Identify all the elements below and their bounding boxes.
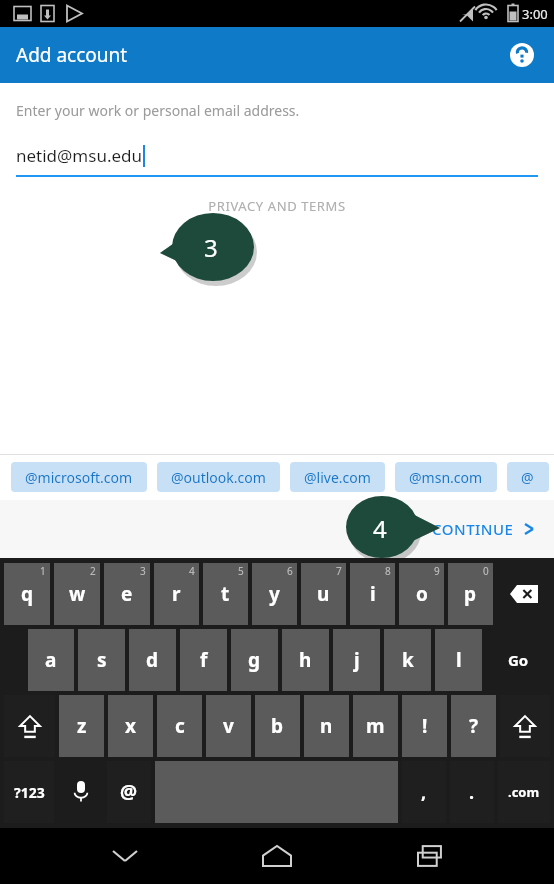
button[interactable]: p (448, 563, 493, 625)
button[interactable]: Go (486, 629, 550, 691)
button[interactable]: @microsoft.com (11, 462, 147, 492)
staticText: . (469, 780, 475, 805)
button[interactable]: e (104, 563, 150, 625)
button[interactable]: x (108, 695, 153, 757)
button[interactable]: @outlook.com (157, 462, 280, 492)
staticText: ? (469, 713, 479, 739)
button[interactable]: k (384, 629, 431, 691)
staticText: z (77, 713, 87, 739)
staticText: e (121, 581, 133, 607)
staticText: x (125, 713, 136, 739)
staticText: Go (508, 650, 529, 670)
staticText: 0 (483, 564, 489, 578)
button[interactable]: Home (249, 828, 305, 884)
staticText: 3 (204, 231, 218, 264)
button[interactable]: r (154, 563, 199, 625)
staticText: 6 (287, 564, 293, 578)
button[interactable]: Voice input (58, 761, 103, 823)
button[interactable]: @live.com (290, 462, 385, 492)
button[interactable]: , (402, 761, 446, 823)
button[interactable]: n (304, 695, 349, 757)
button[interactable]: @ (107, 761, 151, 823)
staticText: b (271, 713, 284, 739)
staticText: 8 (385, 564, 391, 578)
button[interactable]: f (180, 629, 227, 691)
staticText: 7 (336, 564, 342, 578)
staticText: ?123 (14, 783, 45, 802)
button[interactable]: m (353, 695, 398, 757)
staticText: @gmail.com (521, 468, 535, 487)
staticText: a (45, 647, 57, 673)
staticText: @ (120, 779, 138, 805)
staticText: 3:00 (522, 5, 548, 23)
button[interactable]: c (157, 695, 202, 757)
button[interactable]: b (255, 695, 300, 757)
staticText: h (299, 647, 312, 673)
staticText: i (370, 581, 376, 607)
button[interactable]: Recents (402, 828, 458, 884)
button[interactable]: s (78, 629, 125, 691)
button[interactable]: y (252, 563, 297, 625)
staticText: l (456, 647, 462, 673)
button[interactable]: l (435, 629, 482, 691)
button[interactable]: ! (402, 695, 447, 757)
button[interactable]: a (28, 629, 74, 691)
staticText: d (146, 647, 159, 673)
staticText: PRIVACY AND TERMS (0, 197, 554, 215)
button[interactable]: Shift (500, 695, 550, 757)
button[interactable]: . (450, 761, 494, 823)
staticText: o (416, 581, 428, 607)
staticText: netid@msu.edu (16, 144, 143, 167)
button[interactable]: w (54, 563, 100, 625)
button[interactable]: ? (451, 695, 496, 757)
staticText: p (464, 581, 477, 607)
staticText: y (269, 581, 280, 607)
button[interactable]: Shift (4, 695, 55, 757)
staticText: 4 (189, 564, 195, 578)
staticText: n (320, 713, 333, 739)
button[interactable]: @msn.com (395, 462, 497, 492)
staticText: r (172, 581, 181, 607)
button[interactable]: ?123 (4, 761, 54, 823)
staticText: u (317, 581, 330, 607)
button[interactable]: g (231, 629, 278, 691)
staticText: @microsoft.com (25, 468, 133, 487)
staticText: q (21, 581, 34, 607)
button[interactable]: d (129, 629, 176, 691)
button[interactable]: Backspace (497, 563, 550, 625)
staticText: k (402, 647, 414, 673)
staticText: t (221, 581, 230, 607)
staticText: 1 (40, 564, 46, 578)
staticText: 3 (140, 564, 146, 578)
staticText: CONTINUE (432, 519, 514, 539)
button[interactable]: z (59, 695, 104, 757)
staticText: 9 (434, 564, 440, 578)
button[interactable]: j (333, 629, 380, 691)
button[interactable]: .com (498, 761, 550, 823)
button[interactable]: t (203, 563, 248, 625)
staticText: @outlook.com (171, 468, 266, 487)
button[interactable]: q (4, 563, 50, 625)
button[interactable]: @gmail.com (507, 462, 549, 492)
staticText: 5 (238, 564, 244, 578)
staticText: Enter your work or personal email addres… (16, 101, 300, 120)
staticText: 2 (90, 564, 96, 578)
staticText: c (175, 713, 185, 739)
button[interactable]: o (399, 563, 444, 625)
button[interactable]: v (206, 695, 251, 757)
button[interactable]: u (301, 563, 346, 625)
staticText: .com (508, 783, 540, 801)
staticText: 4 (373, 512, 387, 545)
staticText: v (223, 713, 234, 739)
staticText: , (421, 780, 427, 805)
button[interactable]: Hide keyboard (97, 828, 153, 884)
button[interactable]: Help (504, 37, 540, 73)
button[interactable]: h (282, 629, 329, 691)
button[interactable]: CONTINUE (426, 511, 542, 547)
staticText: f (200, 647, 208, 673)
staticText: m (366, 713, 385, 739)
button[interactable]: i (350, 563, 395, 625)
staticText: w (69, 581, 86, 607)
staticText: Add account (16, 42, 128, 68)
